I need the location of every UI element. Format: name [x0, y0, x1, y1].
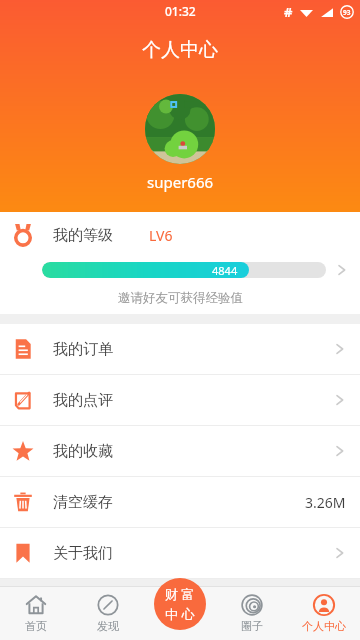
staticText: LV6	[149, 226, 173, 245]
staticText: 中 心	[165, 605, 195, 623]
button[interactable]: 我的点评	[0, 375, 360, 425]
button[interactable]: 关于我们	[0, 528, 360, 578]
button[interactable]: 发现	[72, 586, 144, 640]
button[interactable]: 首页	[0, 586, 72, 640]
staticText: 我的点评	[53, 391, 113, 410]
staticText: 首页	[25, 619, 47, 633]
button[interactable]: 财富中心	[154, 578, 206, 630]
staticText: 3.26M	[305, 493, 346, 512]
staticText: 邀请好友可获得经验值	[118, 290, 243, 306]
staticText: 我的等级	[53, 226, 113, 245]
button[interactable]: 我的订单	[0, 324, 360, 374]
button[interactable]: 个人中心	[288, 586, 360, 640]
staticText: #	[284, 3, 293, 21]
button[interactable]: 圈子	[216, 586, 288, 640]
staticText: 圈子	[241, 619, 263, 633]
staticText: 个人中心	[302, 619, 346, 633]
staticText: 清空缓存	[53, 493, 113, 512]
button[interactable]: 4844	[0, 258, 360, 282]
staticText: 93	[343, 8, 351, 17]
staticText: 4844	[212, 263, 238, 278]
staticText: 我的订单	[53, 340, 113, 359]
button[interactable]: 我的收藏	[0, 426, 360, 476]
staticText: 01:32	[165, 3, 196, 19]
staticText: 财 富	[165, 585, 195, 603]
staticText: 发现	[97, 619, 119, 633]
button[interactable]: 我的等级	[0, 212, 360, 258]
staticText: super666	[147, 172, 214, 192]
staticText: 个人中心	[142, 38, 218, 62]
button[interactable]: 清空缓存	[0, 477, 360, 527]
staticText: 我的收藏	[53, 442, 113, 461]
staticText: 关于我们	[53, 544, 113, 563]
button[interactable]	[145, 94, 215, 164]
